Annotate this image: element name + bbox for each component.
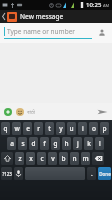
button[interactable]: c — [37, 152, 46, 165]
staticText: q — [3, 124, 8, 133]
button[interactable] — [25, 167, 85, 180]
staticText: x — [29, 154, 33, 163]
staticText: u — [69, 124, 74, 133]
staticText: k — [87, 139, 91, 148]
staticText: b — [61, 154, 66, 163]
staticText: r — [37, 124, 40, 133]
button[interactable]: n — [70, 152, 79, 165]
button[interactable]: Send — [94, 105, 110, 119]
button[interactable]: j — [73, 137, 82, 150]
staticText: New message — [20, 12, 64, 21]
staticText: c — [40, 154, 44, 163]
button[interactable]: t — [45, 122, 54, 135]
button[interactable]: k — [84, 137, 93, 150]
button[interactable]: Backspace — [92, 152, 104, 165]
staticText: a — [10, 139, 14, 148]
button[interactable]: d — [29, 137, 38, 150]
staticText: n — [72, 154, 77, 163]
button[interactable]: u — [67, 122, 76, 135]
staticText: p — [102, 124, 107, 133]
button[interactable]: Voice input — [14, 167, 23, 180]
staticText: t — [48, 124, 51, 133]
button[interactable]: x — [26, 152, 35, 165]
button[interactable]: q — [1, 122, 10, 135]
staticText: h — [64, 139, 69, 148]
button[interactable]: Navigate up — [0, 10, 112, 23]
button[interactable]: s — [18, 137, 27, 150]
button[interactable]: a — [7, 137, 16, 150]
staticText: m — [82, 154, 89, 163]
staticText: 10:25 — [86, 1, 102, 9]
staticText: f — [43, 139, 46, 148]
staticText: j — [77, 139, 79, 148]
other: Navigate up — [2, 13, 6, 20]
staticText: v — [51, 154, 55, 163]
staticText: e — [26, 124, 30, 133]
staticText: Done — [99, 171, 111, 177]
button[interactable]: l — [95, 137, 104, 150]
button[interactable]: Type name or number — [4, 27, 92, 39]
button[interactable]: y — [56, 122, 65, 135]
staticText: w — [14, 124, 20, 133]
button[interactable]: m — [81, 152, 90, 165]
button[interactable]: ?123 — [1, 167, 12, 180]
staticText: . — [91, 169, 93, 178]
button[interactable]: o — [89, 122, 98, 135]
button[interactable]: g — [51, 137, 60, 150]
button[interactable]: z — [15, 152, 24, 165]
button[interactable]: . — [87, 167, 96, 180]
staticText: Type name or number — [7, 27, 76, 36]
staticText: ?123 — [2, 171, 12, 177]
button[interactable]: w — [12, 122, 21, 135]
staticText: y — [59, 124, 63, 133]
staticText: o — [92, 124, 96, 133]
button[interactable]: b — [59, 152, 68, 165]
button[interactable]: Insert emoticon — [14, 106, 25, 117]
staticText: s — [21, 139, 25, 148]
button[interactable]: h — [62, 137, 71, 150]
staticText: g — [53, 139, 58, 148]
staticText: z — [18, 154, 22, 163]
button[interactable]: Done — [98, 167, 111, 180]
button[interactable]: Add attachment — [2, 106, 13, 117]
staticText: i — [82, 124, 84, 133]
button[interactable]: i — [78, 122, 87, 135]
button[interactable]: v — [48, 152, 57, 165]
staticText: AM — [103, 3, 110, 8]
button[interactable]: p — [100, 122, 109, 135]
staticText: বার্তা — [27, 109, 35, 115]
button[interactable]: r — [34, 122, 43, 135]
button[interactable]: Pick contact — [96, 27, 108, 39]
button[interactable]: e — [23, 122, 32, 135]
staticText: d — [31, 139, 36, 148]
button[interactable]: Shift — [1, 152, 13, 165]
staticText: l — [99, 139, 101, 148]
button[interactable]: বার্তা — [27, 109, 94, 115]
button[interactable]: f — [40, 137, 49, 150]
